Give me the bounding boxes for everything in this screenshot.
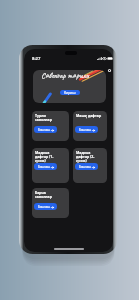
staticText: Машқ дафтар (76, 113, 102, 118)
staticText: Барча саволлар (35, 190, 52, 199)
staticText: Мадина дафтар (2- қисм) (76, 150, 95, 163)
staticText: 8:27 (32, 56, 41, 62)
button[interactable]: Мадина дафтар (2- қисм) (73, 148, 107, 183)
button[interactable]: Машқ дафтар (73, 111, 107, 141)
staticText: Турли саволлар (35, 113, 52, 122)
button[interactable]: Бошлаш (75, 126, 98, 133)
button[interactable]: Settings (108, 69, 111, 72)
staticText: Бошлаш (38, 165, 50, 169)
staticText: Мадина дафтар (1- қисм) (35, 150, 54, 163)
staticText: Саволлар тарихи (41, 70, 89, 80)
staticText: Бошлаш (38, 128, 50, 132)
button[interactable]: Турли саволлар (32, 111, 69, 141)
staticText: Бошлаш (79, 165, 91, 169)
staticText: Бошлаш (38, 205, 50, 209)
button[interactable]: Кириш (60, 90, 80, 95)
staticText: Бошлаш (79, 128, 91, 132)
staticText: Кириш (64, 90, 76, 95)
button[interactable]: Барча саволлар (32, 188, 69, 218)
button[interactable]: Мадина дафтар (1- қисм) (32, 148, 69, 183)
button[interactable]: Бошлаш (34, 163, 57, 170)
button[interactable]: Бошлаш (34, 203, 57, 210)
button[interactable]: Бошлаш (34, 126, 57, 133)
button[interactable]: Бошлаш (75, 163, 98, 170)
